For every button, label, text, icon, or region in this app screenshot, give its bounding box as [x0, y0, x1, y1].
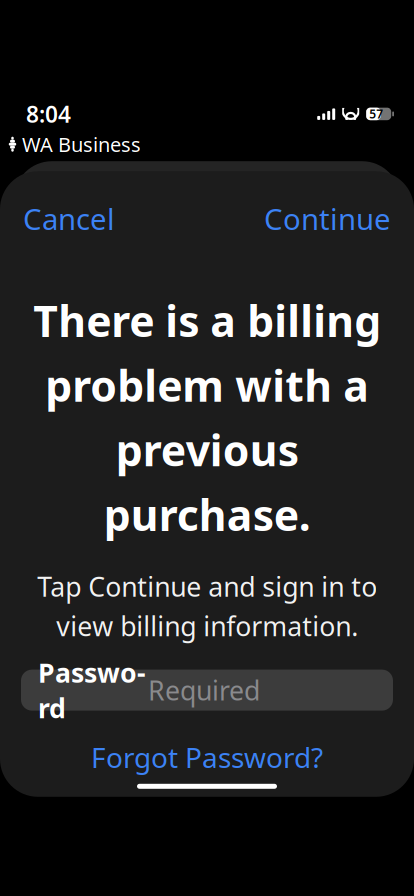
button[interactable]: Continue — [262, 193, 393, 244]
button[interactable]: Back to WA Business — [0, 129, 141, 159]
staticText: There is a billing problem with a previo… — [33, 292, 381, 543]
staticText: Cancel — [23, 199, 115, 238]
staticText: 8:04 — [26, 99, 71, 129]
staticText: 57 — [369, 106, 383, 122]
button[interactable]: Cancel — [21, 193, 117, 244]
staticText: Required — [148, 672, 260, 708]
staticText: WA Business — [22, 131, 141, 157]
button[interactable]: Password — [21, 670, 393, 711]
staticText: Continue — [264, 199, 391, 238]
button[interactable]: Forgot Password? — [81, 731, 333, 784]
staticText: Password — [38, 655, 146, 725]
staticText: Tap Continue and sign in to view billing… — [37, 569, 377, 644]
staticText: Forgot Password? — [91, 739, 323, 776]
